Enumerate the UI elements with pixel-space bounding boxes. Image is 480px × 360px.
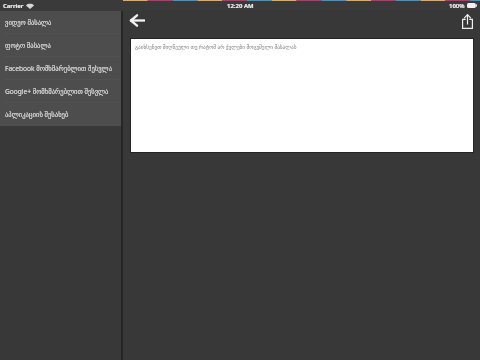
button[interactable]: Facebook მომხმარებლით შესვლა [0,57,121,80]
button[interactable]: ფოტო მასალა [0,34,121,57]
staticText: Carrier [3,2,24,10]
staticText: ფოტო მასალა [5,41,51,50]
button[interactable]: Google+ მომხმარებლით შესვლა [0,80,121,103]
button[interactable]: აპლიკაციის შესახებ [0,103,121,126]
staticText: 12:20 AM [227,2,254,10]
staticText: აპლიკაციის შესახებ [5,110,69,119]
button[interactable]: Back [126,12,148,34]
staticText: ვიდეო მასალა [5,18,52,27]
button[interactable]: Share [456,12,478,34]
staticText: Google+ მომხმარებლით შესვლა [5,87,109,96]
staticText: 100% [449,2,465,10]
button[interactable]: გაიხსენეთ მიღწეული თუ რატომ არ ქულები მო… [131,39,473,152]
button[interactable]: ვიდეო მასალა [0,11,121,34]
staticText: Facebook მომხმარებლით შესვლა [5,64,112,73]
staticText: გაიხსენეთ მიღწეული თუ რატომ არ ქულები მო… [135,43,297,50]
